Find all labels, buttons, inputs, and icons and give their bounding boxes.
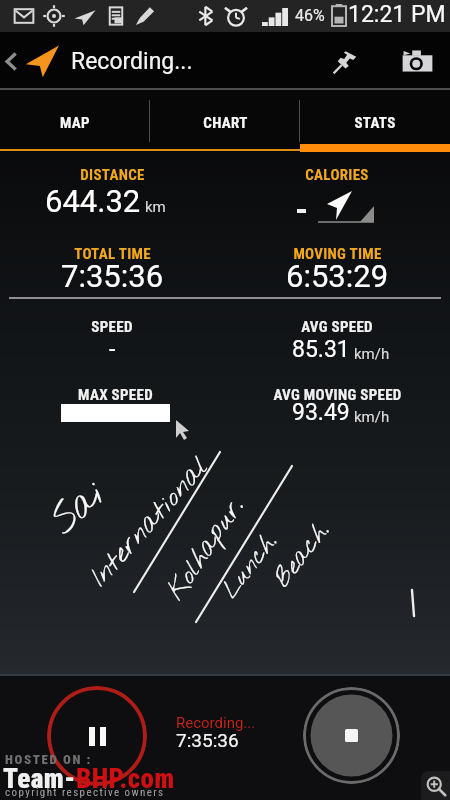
staticText: DISTANCE <box>80 166 145 184</box>
button[interactable]: Stop <box>303 687 400 784</box>
staticText: 85.31 <box>292 336 350 363</box>
button[interactable]: Back <box>0 32 22 90</box>
staticText: Team- <box>3 763 76 795</box>
staticText: Beach. <box>267 517 337 594</box>
staticText: 12:21 PM <box>348 1 446 28</box>
button[interactable]: Camera <box>392 40 442 82</box>
staticText: 644.32 <box>45 183 141 219</box>
staticText: km <box>145 198 166 216</box>
staticText: 7:35:36 <box>61 258 164 294</box>
staticText: 46% <box>295 6 325 25</box>
staticText: CALORIES <box>305 166 369 184</box>
button[interactable]: CHART <box>150 90 300 152</box>
staticText: 6:53:29 <box>286 258 389 294</box>
staticText: MAX SPEED <box>78 386 153 404</box>
staticText: SPEED <box>91 318 133 336</box>
button[interactable]: Pause <box>47 686 147 786</box>
staticText: copyright respective owners <box>5 786 165 799</box>
staticText: - <box>109 336 116 363</box>
staticText: Sai <box>40 469 117 546</box>
staticText: BHP.com <box>76 763 175 795</box>
staticText: AVG MOVING SPEED <box>273 386 402 404</box>
staticText: International <box>83 449 218 595</box>
button[interactable]: MAP <box>0 90 150 152</box>
staticText: AVG SPEED <box>301 318 373 336</box>
staticText: 93.49 <box>292 399 350 426</box>
staticText: MAP <box>60 114 90 132</box>
staticText: TOTAL TIME <box>74 245 151 263</box>
staticText: km/h <box>354 345 390 363</box>
staticText: CHART <box>203 114 248 132</box>
staticText: Recording... <box>176 714 256 732</box>
button[interactable]: Pin <box>322 40 368 82</box>
staticText: Lunch. <box>215 528 285 605</box>
button[interactable]: Zoom in <box>421 771 450 800</box>
staticText: Recording... <box>71 48 193 75</box>
staticText: HOSTED ON : <box>5 752 92 767</box>
staticText: 7:35:36 <box>176 729 239 751</box>
button[interactable]: STATS <box>300 90 450 152</box>
staticText: km/h <box>354 408 390 426</box>
staticText: MOVING TIME <box>293 245 382 263</box>
staticText: STATS <box>354 114 396 132</box>
staticText: Kolhapur. <box>159 492 253 608</box>
